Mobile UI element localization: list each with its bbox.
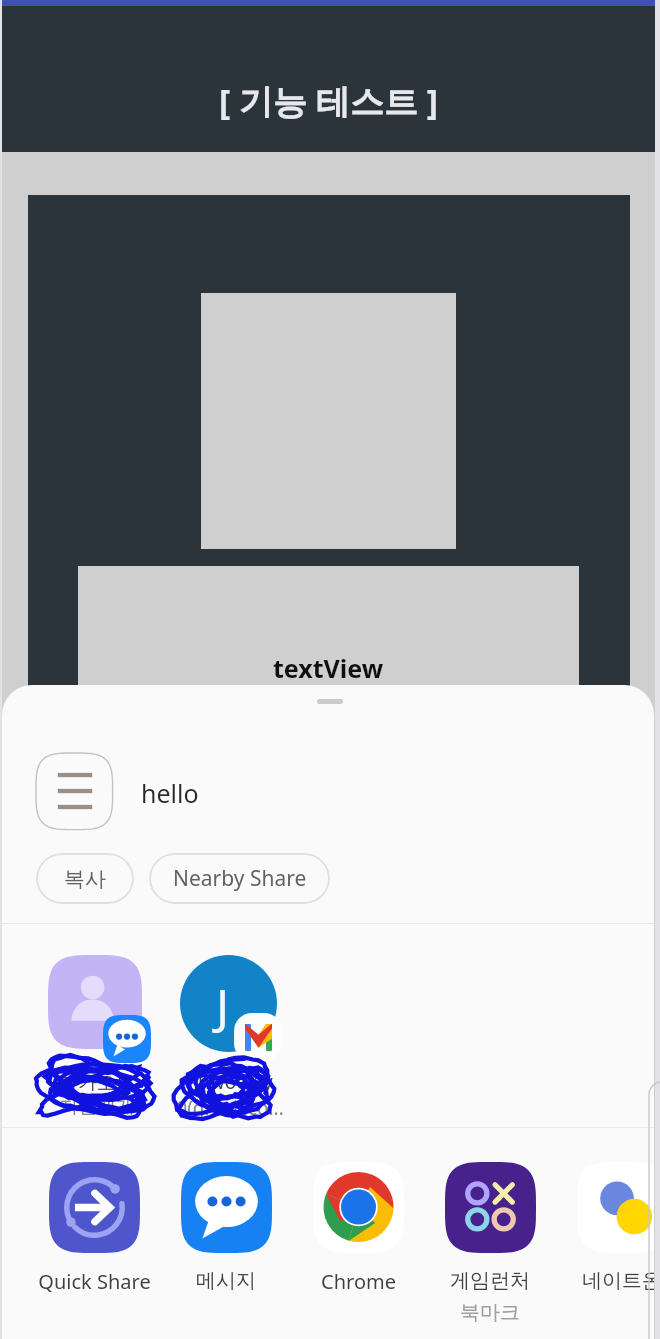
staticText: [ 기능 테스트 ] [219,78,439,124]
staticText: 0(gmail.co... [176,1095,284,1121]
button[interactable]: 네이트온 [556,1162,654,1293]
button[interactable]: 게임런처 [424,1162,556,1325]
button[interactable]: Nearby Share [149,853,330,904]
staticText: 메시지 [196,1268,256,1293]
staticText: 카카오톡 [59,1071,135,1095]
button[interactable]: hello [36,753,436,831]
staticText: hello [141,776,199,810]
button[interactable]: Direct share contact 2 [165,939,295,1127]
staticText: 지인에게 [59,1095,135,1119]
staticText: 게임런처 [450,1268,530,1293]
button[interactable]: Quick Share [28,1162,160,1295]
staticText: J [216,973,230,1038]
button[interactable]: Chrome [292,1162,424,1295]
staticText: 북마크 [460,1300,520,1325]
staticText: textView [273,651,384,685]
staticText: Quick Share [38,1268,151,1295]
staticText: jinwook.y [188,1069,273,1095]
button[interactable]: Direct share contact 1 [34,939,159,1127]
button[interactable]: 복사 [36,853,134,904]
staticText: 복사 [64,866,106,892]
staticText: Nearby Share [173,864,307,893]
button[interactable]: 메시지 [160,1162,292,1293]
staticText: Chrome [321,1268,396,1295]
staticText: 네이트온 [582,1268,654,1293]
